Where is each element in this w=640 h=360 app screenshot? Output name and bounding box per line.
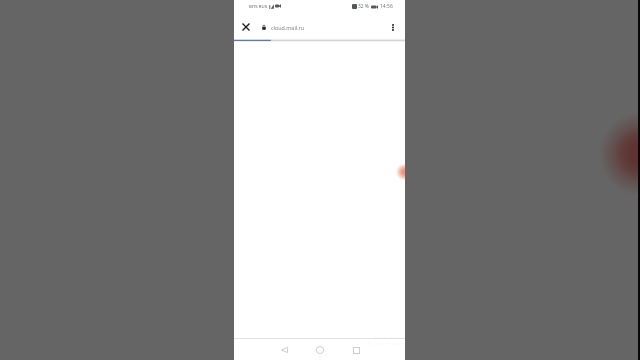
button[interactable]: cloud.mail.ru: [256, 15, 383, 39]
button[interactable]: More options: [383, 17, 403, 37]
button[interactable]: Close: [236, 17, 256, 37]
staticText: 14:56: [380, 3, 393, 10]
staticText: cloud.mail.ru: [271, 24, 305, 31]
staticText: Запись экрана: [374, 335, 404, 341]
staticText: 32 %: [358, 3, 369, 10]
button[interactable]: Home: [310, 340, 330, 360]
button[interactable]: Back: [274, 340, 294, 360]
staticText: MTS RUS: [249, 3, 268, 9]
button[interactable]: Recents: [346, 340, 366, 360]
